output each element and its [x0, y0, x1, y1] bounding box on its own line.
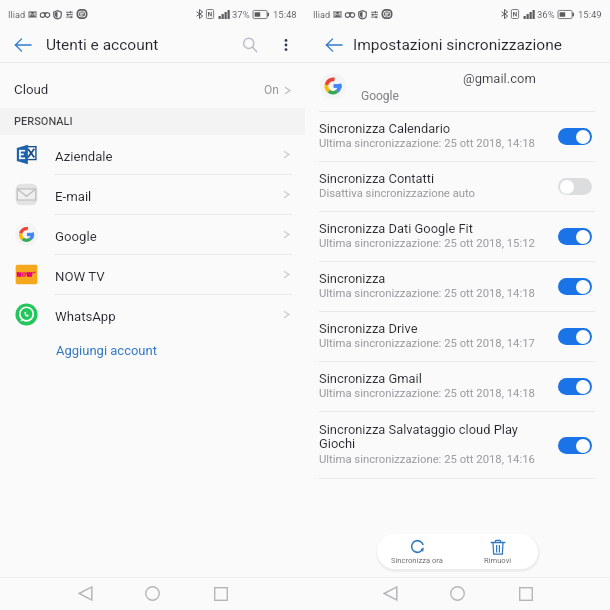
staticText: Sincronizza ora — [391, 556, 443, 565]
staticText: Ultima sincronizzazione: 25 ott 2018, 14… — [319, 387, 569, 400]
button[interactable]: Rimuovi — [457, 534, 538, 569]
staticText: E-mail — [55, 189, 92, 204]
staticText: Google — [55, 229, 97, 244]
staticText: Ultima sincronizzazione: 25 ott 2018, 14… — [319, 137, 569, 150]
staticText: Cloud — [14, 82, 49, 98]
button[interactable]: Sincronizza Drive — [305, 312, 610, 361]
staticText: PERSONALI — [14, 115, 73, 128]
staticText: @gmail.com — [463, 71, 536, 86]
staticText: Sincronizza Gmail — [319, 371, 523, 386]
staticText: Utenti e account — [46, 36, 159, 54]
staticText: Ultima sincronizzazione: 25 ott 2018, 14… — [319, 337, 569, 350]
staticText: Impostazioni sincronizzazione — [353, 36, 562, 54]
button[interactable]: Sincronizza Contatti — [305, 162, 610, 211]
staticText: Iliad — [313, 9, 331, 20]
staticText: Sincronizza Calendario — [319, 121, 523, 136]
staticText: Aggiungi account — [56, 343, 157, 358]
button[interactable]: Cloud — [0, 63, 305, 108]
button[interactable]: On — [558, 328, 592, 345]
button[interactable]: Google — [0, 215, 305, 254]
button[interactable]: On — [558, 278, 592, 295]
button[interactable]: On — [558, 378, 592, 395]
button[interactable]: Aziendale — [0, 135, 305, 174]
button[interactable]: WhatsApp — [0, 295, 305, 334]
button[interactable]: Recents — [509, 577, 543, 610]
button[interactable]: Sincronizza Calendario — [305, 112, 610, 161]
button[interactable]: Search — [235, 30, 265, 60]
button[interactable]: More options — [271, 30, 301, 60]
button[interactable]: Home — [440, 577, 474, 610]
staticText: On — [264, 83, 279, 97]
staticText: Sincronizza Contatti — [319, 171, 523, 186]
staticText: Ultima sincronizzazione: 25 ott 2018, 14… — [319, 453, 569, 466]
button[interactable]: Sincronizza Salvataggio cloud Play Gioch… — [305, 412, 610, 478]
staticText: 15:48 — [273, 9, 297, 20]
staticText: WhatsApp — [55, 309, 116, 324]
staticText: Google — [361, 89, 399, 103]
button[interactable]: Aggiungi account — [52, 339, 161, 362]
staticText: Iliad — [8, 9, 26, 20]
staticText: Sincronizza Dati Google Fit — [319, 221, 523, 236]
button[interactable]: Recents — [204, 577, 238, 610]
staticText: 37% — [232, 9, 250, 20]
button[interactable]: NOW TV — [0, 255, 305, 294]
staticText: Rimuovi — [484, 556, 512, 565]
button[interactable]: Sincronizza Dati Google Fit — [305, 212, 610, 261]
staticText: 15:49 — [578, 9, 602, 20]
staticText: 36% — [537, 9, 555, 20]
staticText: Aziendale — [55, 149, 113, 164]
staticText: Sincronizza Drive — [319, 321, 523, 336]
button[interactable]: Sincronizza — [305, 262, 610, 311]
button[interactable]: Back — [6, 28, 40, 62]
staticText: Ultima sincronizzazione: 25 ott 2018, 15… — [319, 237, 569, 250]
staticText: NOW TV — [55, 269, 105, 284]
button[interactable]: Back — [373, 577, 407, 610]
button[interactable]: On — [558, 228, 592, 245]
staticText: Sincronizza Salvataggio cloud Play Gioch… — [319, 422, 523, 452]
button[interactable]: Back — [317, 28, 351, 62]
button[interactable]: Home — [135, 577, 169, 610]
button[interactable]: Off — [558, 178, 592, 195]
staticText: Sincronizza — [319, 271, 523, 286]
staticText: Disattiva sincronizzazione auto — [319, 187, 569, 200]
button[interactable]: Sincronizza Gmail — [305, 362, 610, 411]
button[interactable]: E-mail — [0, 175, 305, 214]
button[interactable]: Back — [68, 577, 102, 610]
button[interactable]: On — [558, 128, 592, 145]
staticText: Ultima sincronizzazione: 25 ott 2018, 14… — [319, 287, 569, 300]
button[interactable]: Sincronizza ora — [377, 534, 457, 569]
button[interactable]: On — [558, 437, 592, 454]
